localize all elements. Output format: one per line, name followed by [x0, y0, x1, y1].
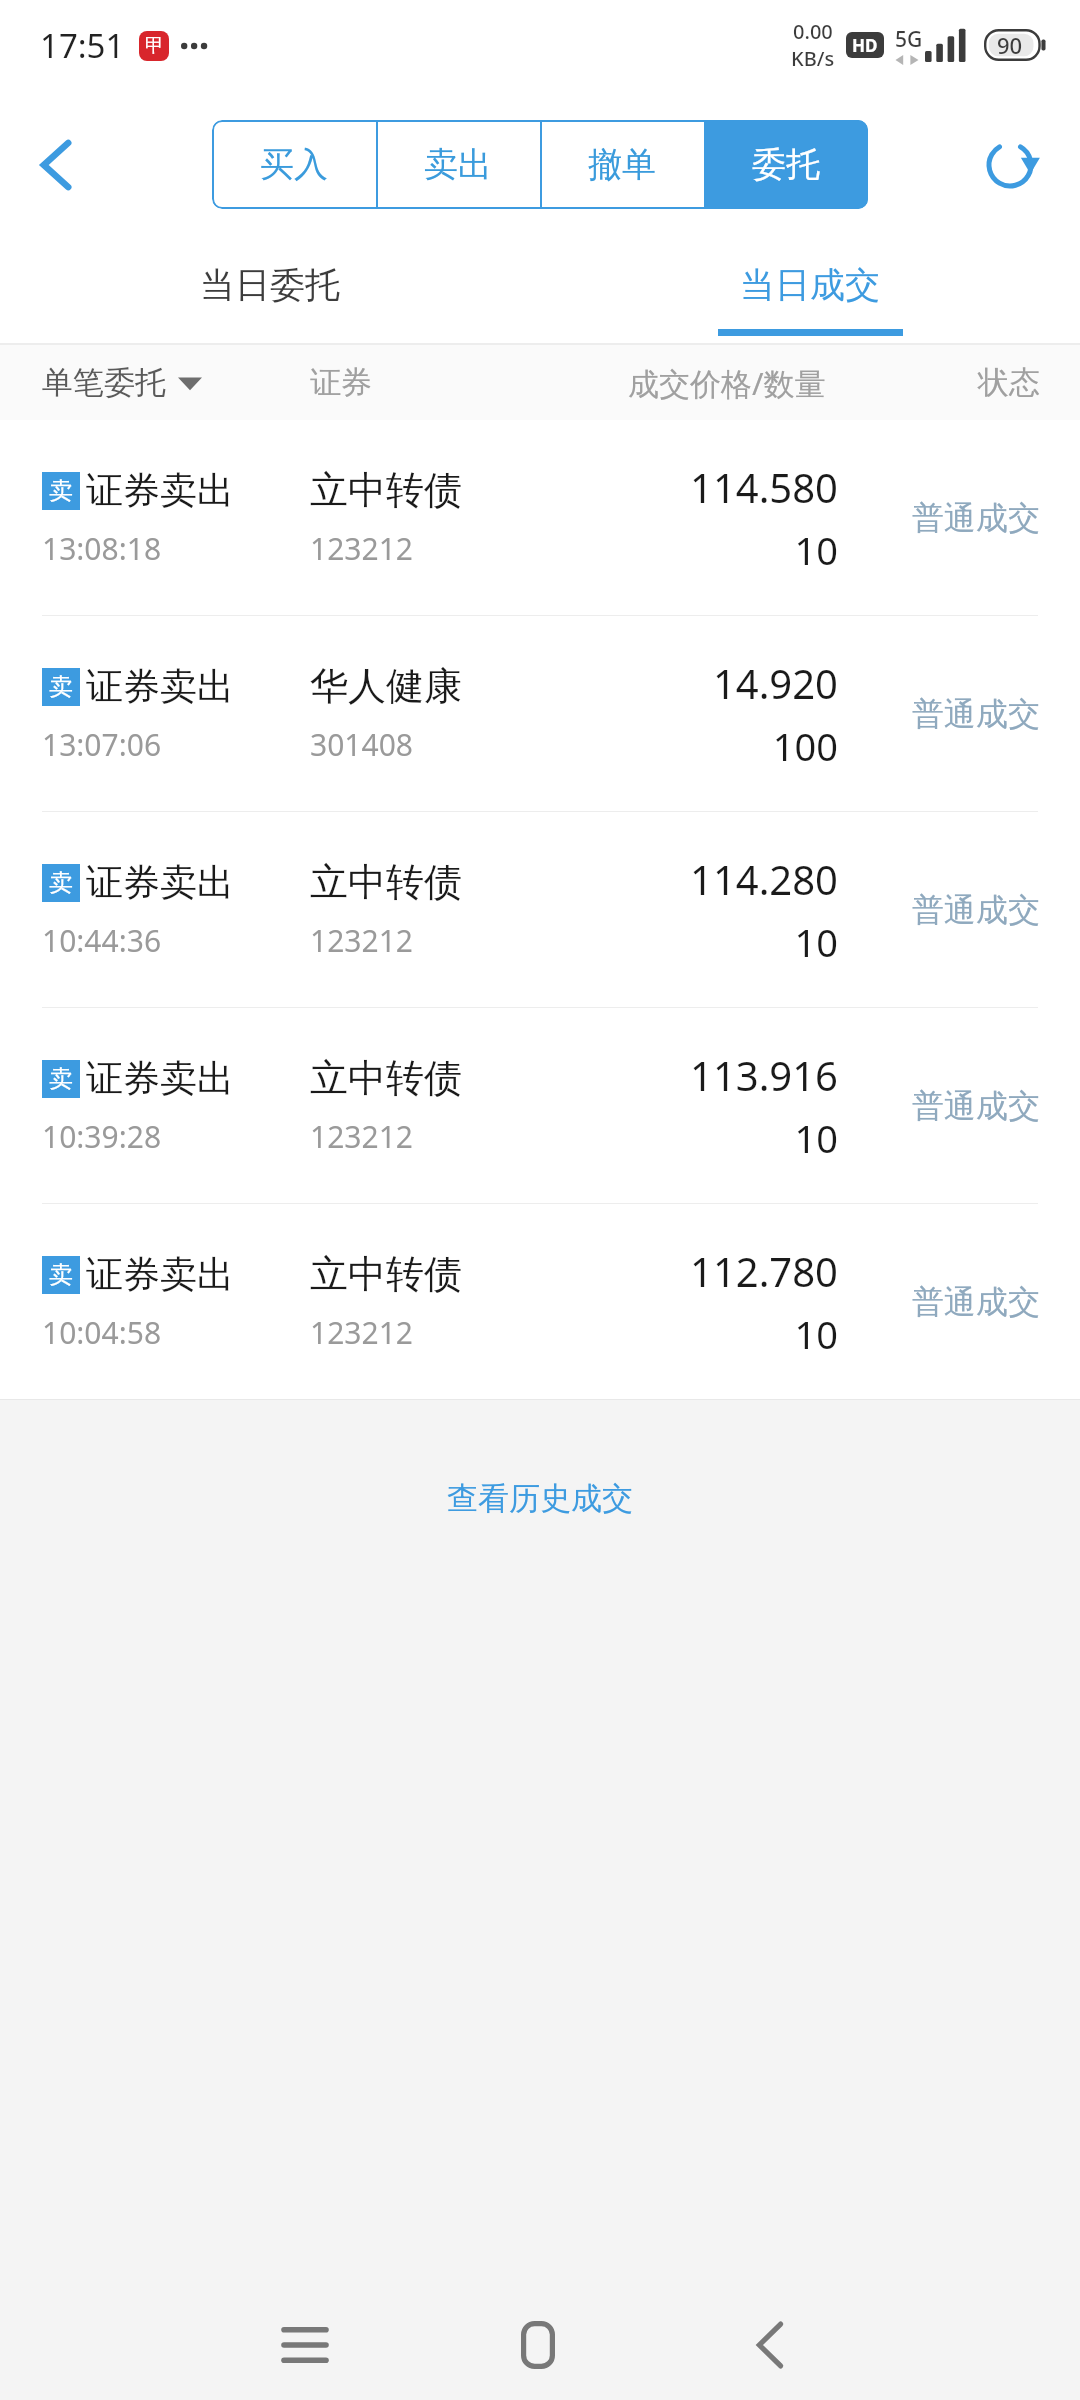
button[interactable]: 当日委托	[0, 240, 540, 345]
staticText: 立中转债	[310, 466, 462, 514]
staticText: 10:39:28	[42, 1116, 162, 1157]
staticText: 状态	[978, 363, 1040, 402]
staticText: 普通成交	[912, 1282, 1040, 1322]
staticText: 10:04:58	[42, 1312, 162, 1353]
staticText: KB/s	[791, 45, 835, 72]
staticText: 委托	[752, 143, 820, 186]
staticText: 5G	[895, 25, 923, 54]
staticText: 卖	[49, 1064, 73, 1094]
button[interactable]: Back	[710, 2290, 830, 2400]
staticText: 114.280	[690, 852, 838, 906]
staticText: 10	[794, 524, 838, 576]
button[interactable]: Back	[4, 113, 108, 217]
staticText: 普通成交	[912, 694, 1040, 734]
staticText: 113.916	[690, 1048, 838, 1102]
button[interactable]: 卖	[0, 1204, 1080, 1399]
staticText: 13:08:18	[42, 528, 162, 569]
staticText: 当日委托	[200, 263, 340, 307]
staticText: 立中转债	[310, 1054, 462, 1102]
button[interactable]: 当日成交	[540, 240, 1080, 345]
staticText: HD	[852, 34, 878, 57]
staticText: 证券卖出	[86, 1251, 234, 1298]
staticText: 撤单	[588, 143, 656, 186]
staticText: 立中转债	[310, 1250, 462, 1298]
button[interactable]: 卖	[0, 616, 1080, 811]
staticText: 14.920	[712, 656, 838, 710]
button[interactable]: Refresh	[958, 113, 1062, 217]
button[interactable]: Home	[478, 2290, 598, 2400]
staticText: 普通成交	[912, 890, 1040, 930]
staticText: 证券卖出	[86, 1055, 234, 1102]
button[interactable]: 卖	[0, 1008, 1080, 1203]
staticText: 证券卖出	[86, 663, 234, 710]
button[interactable]: 查看历史成交	[0, 1400, 1080, 1596]
staticText: 17:51	[40, 23, 125, 68]
button[interactable]: 买入	[212, 120, 376, 209]
staticText: 13:07:06	[42, 724, 162, 765]
button[interactable]: 卖出	[376, 120, 540, 209]
staticText: 123212	[310, 528, 413, 569]
staticText: 10	[794, 1112, 838, 1164]
staticText: 当日成交	[740, 263, 880, 307]
staticText: 普通成交	[912, 498, 1040, 538]
staticText: 90	[997, 30, 1023, 60]
staticText: 立中转债	[310, 858, 462, 906]
staticText: 123212	[310, 1312, 413, 1353]
staticText: 普通成交	[912, 1086, 1040, 1126]
staticText: 卖	[49, 1260, 73, 1290]
staticText: 卖	[49, 476, 73, 506]
staticText: 成交价格/数量	[628, 362, 826, 404]
staticText: 单笔委托	[42, 363, 166, 402]
staticText: 卖	[49, 672, 73, 702]
staticText: 证券	[310, 363, 372, 402]
button[interactable]: Recent apps	[245, 2290, 365, 2400]
staticText: 10	[794, 916, 838, 968]
staticText: 证券卖出	[86, 859, 234, 906]
staticText: 10	[794, 1308, 838, 1360]
staticText: 卖	[49, 868, 73, 898]
staticText: 301408	[310, 724, 413, 765]
staticText: 证券卖出	[86, 467, 234, 514]
staticText: 114.580	[690, 460, 838, 514]
button[interactable]: 撤单	[540, 120, 704, 209]
staticText: 112.780	[690, 1244, 838, 1298]
staticText: 甲	[145, 34, 164, 58]
staticText: 123212	[310, 1116, 413, 1157]
staticText: 查看历史成交	[447, 1479, 633, 1518]
button[interactable]: 卖	[0, 812, 1080, 1007]
button[interactable]: 单笔委托	[42, 363, 202, 402]
staticText: 123212	[310, 920, 413, 961]
staticText: 华人健康	[310, 662, 462, 710]
staticText: 0.00	[793, 18, 833, 45]
staticText: 买入	[260, 143, 328, 186]
staticText: 100	[772, 720, 838, 772]
staticText: 卖出	[424, 143, 492, 186]
button[interactable]: 卖	[0, 420, 1080, 615]
button[interactable]: 委托	[704, 120, 868, 209]
staticText: 10:44:36	[42, 920, 162, 961]
